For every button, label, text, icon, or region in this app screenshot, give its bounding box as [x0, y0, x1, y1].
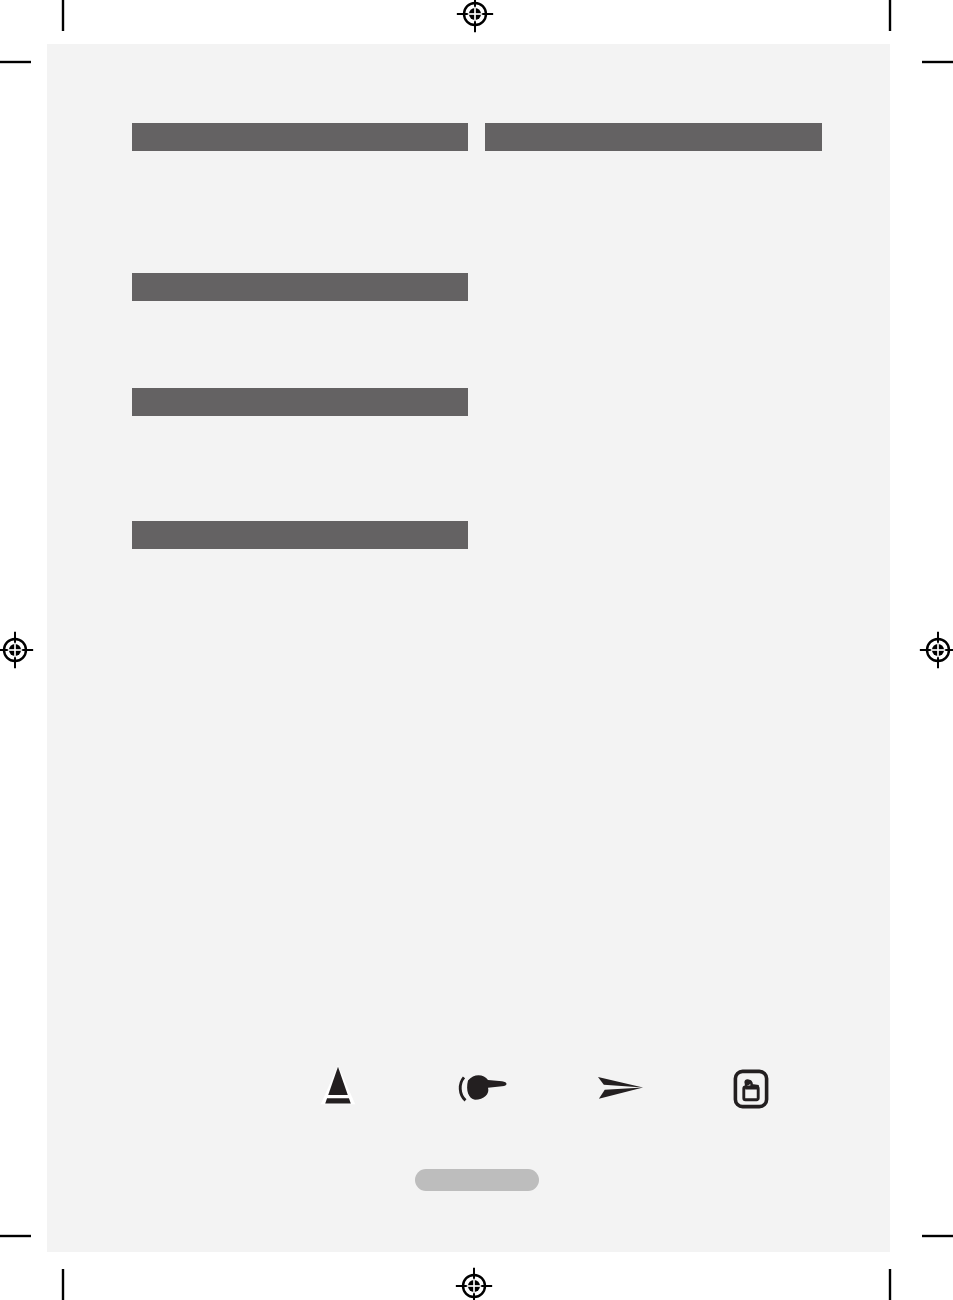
button[interactable] [415, 1169, 539, 1191]
button[interactable]: Press button [733, 1069, 769, 1109]
button[interactable]: Note [458, 1071, 508, 1103]
button[interactable]: Next [598, 1073, 643, 1101]
button[interactable]: Caution [318, 1064, 358, 1108]
